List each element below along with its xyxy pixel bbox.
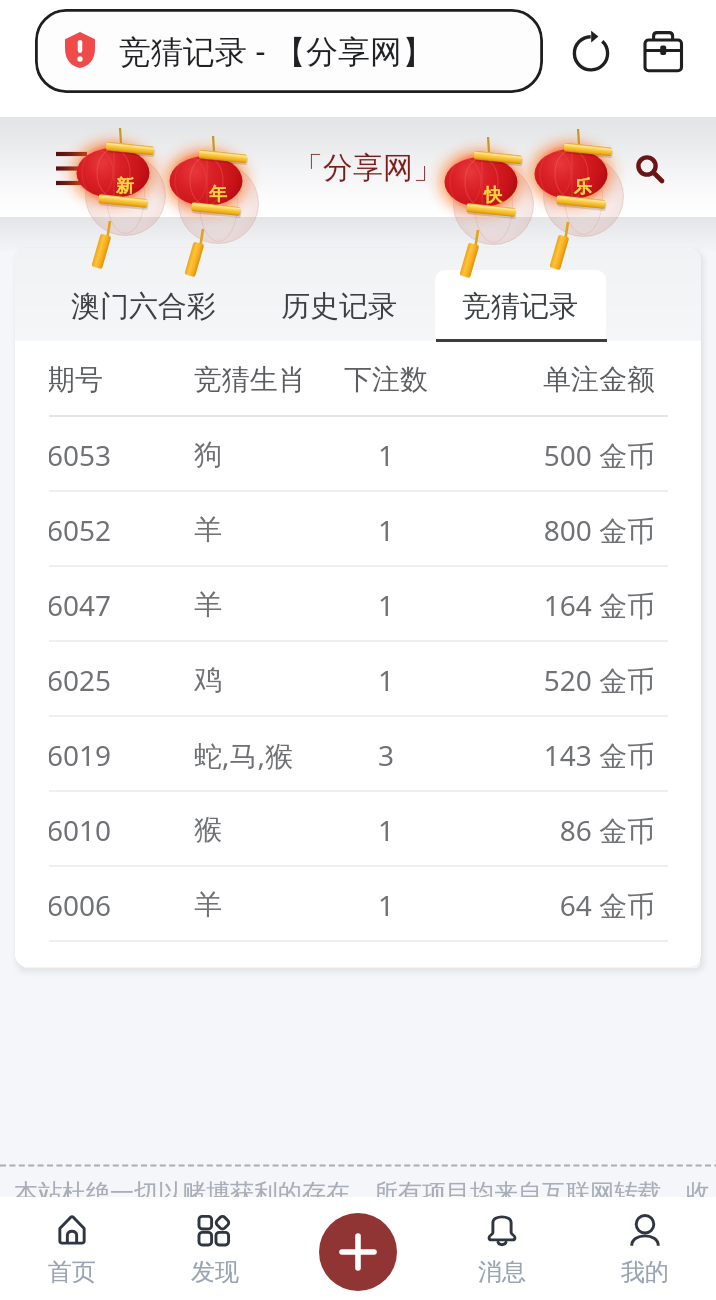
staticText: 下注数 bbox=[334, 362, 438, 397]
staticText: 164 金币 bbox=[438, 586, 655, 624]
staticText: 6047 bbox=[49, 586, 112, 624]
button[interactable]: 期号 bbox=[49, 341, 668, 417]
button[interactable]: 竞猜记录 - 【分享网】 bbox=[35, 9, 543, 93]
staticText: 86 金币 bbox=[438, 811, 655, 849]
staticText: 520 金币 bbox=[438, 661, 655, 699]
button[interactable]: Menu bbox=[48, 143, 96, 187]
staticText: 6025 bbox=[49, 661, 112, 699]
button[interactable]: 6010 bbox=[49, 792, 668, 867]
button[interactable]: Reload bbox=[566, 29, 614, 77]
button[interactable]: 6025 bbox=[49, 642, 668, 717]
staticText: 历史记录 bbox=[281, 288, 397, 325]
staticText: 首页 bbox=[48, 1257, 96, 1287]
staticText: 143 金币 bbox=[438, 736, 655, 774]
staticText: 本站杜绝一切以赌博获利的存在，所有项目均来自互联网转载，收 bbox=[14, 1178, 710, 1208]
staticText: 羊 bbox=[194, 587, 334, 622]
staticText: 竞猜生肖 bbox=[194, 362, 334, 397]
staticText: 澳门六合彩 bbox=[71, 288, 216, 325]
button[interactable]: 6053 bbox=[49, 417, 668, 492]
staticText: 蛇,马,猴 bbox=[194, 736, 334, 774]
staticText: 年 bbox=[209, 183, 227, 206]
button[interactable]: 6052 bbox=[49, 492, 668, 567]
staticText: 800 金币 bbox=[438, 511, 655, 549]
button[interactable]: 竞猜记录 bbox=[429, 270, 610, 341]
staticText: 羊 bbox=[194, 887, 334, 922]
staticText: 狗 bbox=[194, 437, 334, 472]
button[interactable]: 我的 bbox=[573, 1197, 716, 1300]
staticText: 消息 bbox=[478, 1257, 526, 1287]
button[interactable]: 澳门六合彩 bbox=[38, 270, 248, 341]
staticText: 竞猜记录 - 【分享网】 bbox=[119, 29, 434, 73]
staticText: 6006 bbox=[49, 886, 112, 924]
staticText: 500 金币 bbox=[438, 436, 655, 474]
staticText: 1 bbox=[334, 436, 438, 474]
staticText: 1 bbox=[334, 811, 438, 849]
staticText: 猴 bbox=[194, 812, 334, 847]
staticText: 期号 bbox=[49, 362, 103, 397]
staticText: 快 bbox=[484, 184, 502, 207]
staticText: 6052 bbox=[49, 511, 112, 549]
staticText: 64 金币 bbox=[438, 886, 655, 924]
staticText: 鸡 bbox=[194, 662, 334, 697]
staticText: 1 bbox=[334, 586, 438, 624]
staticText: 1 bbox=[334, 661, 438, 699]
button[interactable]: Add bbox=[319, 1213, 397, 1291]
staticText: 「分享网」 bbox=[293, 149, 443, 187]
staticText: 乐 bbox=[574, 176, 592, 199]
staticText: 1 bbox=[334, 511, 438, 549]
button[interactable]: Search bbox=[625, 143, 671, 189]
staticText: 单注金额 bbox=[438, 362, 655, 397]
staticText: 6019 bbox=[49, 736, 112, 774]
staticText: 6053 bbox=[49, 436, 112, 474]
staticText: 羊 bbox=[194, 512, 334, 547]
button[interactable]: 6047 bbox=[49, 567, 668, 642]
button[interactable]: 历史记录 bbox=[248, 270, 429, 341]
staticText: 发现 bbox=[191, 1257, 239, 1287]
staticText: 6010 bbox=[49, 811, 112, 849]
staticText: 我的 bbox=[621, 1257, 669, 1287]
button[interactable]: 发现 bbox=[143, 1197, 286, 1300]
staticText: 1 bbox=[334, 886, 438, 924]
button[interactable]: 消息 bbox=[430, 1197, 573, 1300]
staticText: 新 bbox=[116, 175, 134, 198]
button[interactable]: 6019 bbox=[49, 717, 668, 792]
button[interactable]: Toolbox bbox=[639, 29, 687, 77]
staticText: 竞猜记录 bbox=[462, 288, 578, 325]
button[interactable]: 首页 bbox=[0, 1197, 143, 1300]
button[interactable]: 6006 bbox=[49, 867, 668, 942]
staticText: 3 bbox=[334, 736, 438, 774]
